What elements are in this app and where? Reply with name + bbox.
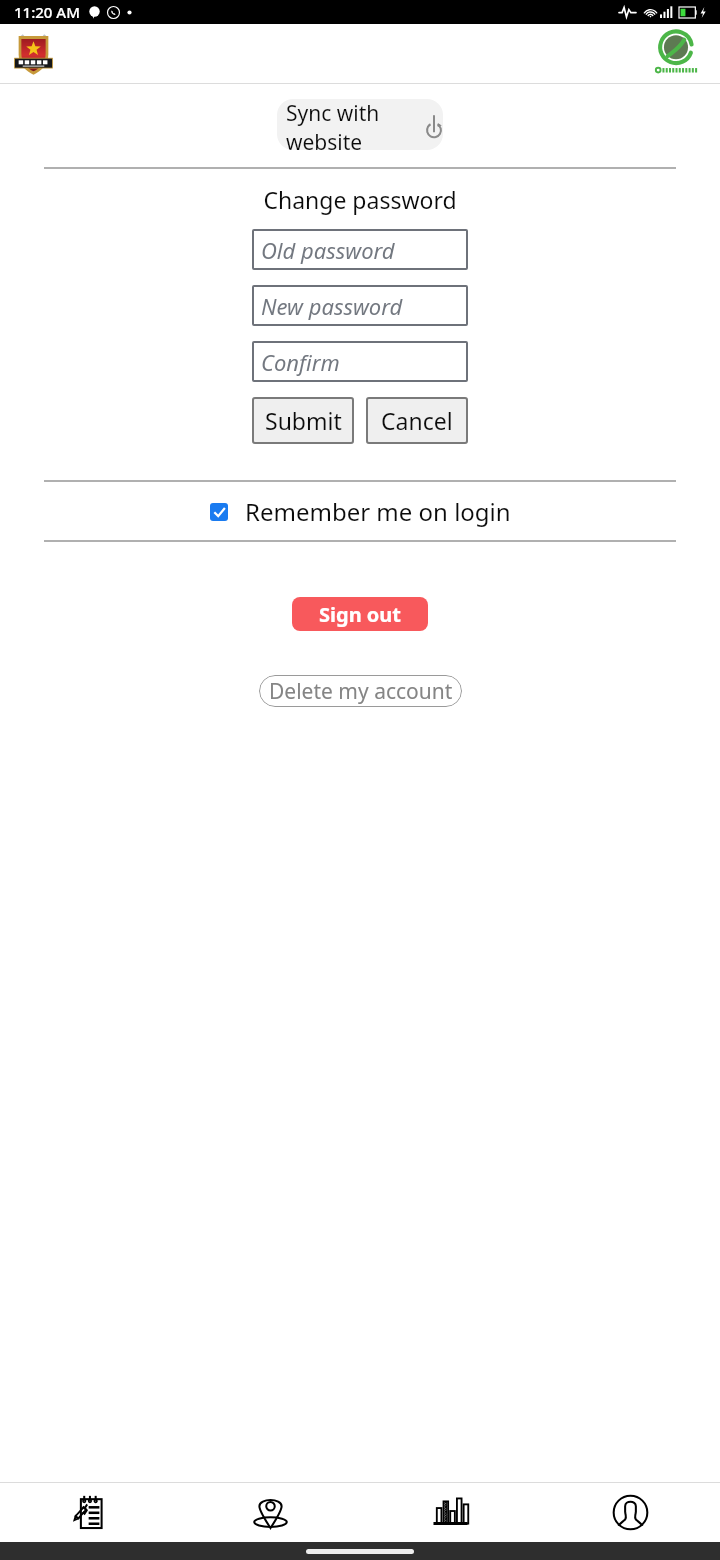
other: Romax Security: [11, 30, 56, 77]
staticText: Sign out: [319, 601, 402, 628]
button[interactable]: Profile: [540, 1483, 720, 1542]
button[interactable]: Reports: [360, 1483, 540, 1542]
button[interactable]: Old password: [252, 229, 468, 270]
staticText: Remember me on login: [245, 495, 511, 528]
staticText: Old password: [261, 235, 395, 265]
button[interactable]: Cancel: [366, 397, 468, 444]
staticText: Confirm: [261, 347, 340, 377]
staticText: Sync with website: [286, 99, 434, 150]
button[interactable]: Tasks: [0, 1483, 180, 1542]
button[interactable]: Location: [180, 1483, 360, 1542]
button[interactable]: Delete my account: [259, 675, 462, 707]
button[interactable]: Remember me on login: [210, 495, 511, 528]
staticText: 11:20 AM: [14, 2, 80, 22]
button[interactable]: Sync with website: [277, 99, 443, 150]
staticText: Cancel: [381, 405, 453, 436]
staticText: Delete my account: [269, 677, 453, 706]
button[interactable]: Confirm: [252, 341, 468, 382]
staticText: Change password: [0, 184, 720, 215]
button[interactable]: New password: [252, 285, 468, 326]
staticText: Submit: [265, 405, 342, 436]
button[interactable]: Sign out: [292, 597, 428, 631]
other: Ontouch: [652, 30, 700, 78]
staticText: New password: [261, 291, 403, 321]
button[interactable]: Submit: [252, 397, 354, 444]
